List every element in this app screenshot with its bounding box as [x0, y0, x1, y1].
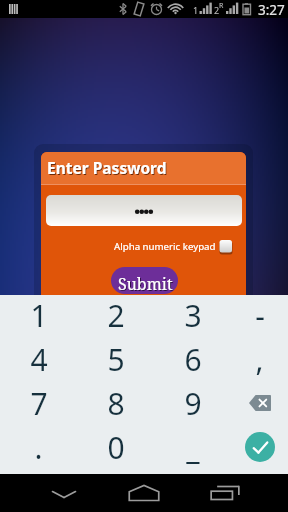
staticText: - [255, 295, 265, 336]
other: Enter [245, 432, 275, 462]
staticText: 4 [30, 339, 48, 380]
button[interactable]: - [231, 293, 288, 337]
staticText: Alpha numeric keypad [114, 240, 216, 253]
staticText: R [219, 1, 224, 11]
button[interactable]: Back [40, 478, 88, 508]
button[interactable]: Submit [111, 267, 178, 294]
staticText: , [255, 339, 264, 380]
staticText: 2 [214, 4, 220, 16]
staticText: 7 [30, 383, 48, 424]
staticText: 1 [30, 295, 48, 336]
staticText: 0 [107, 427, 125, 468]
staticText: Enter Password [48, 158, 168, 179]
button[interactable]: 6 [154, 337, 231, 381]
button[interactable]: Recent apps [201, 478, 249, 508]
staticText: 5 [107, 339, 125, 380]
staticText: Submit [118, 273, 173, 294]
staticText: Enter Password [47, 157, 167, 178]
button[interactable]: , [231, 337, 288, 381]
staticText: Submit [119, 274, 174, 294]
staticText: 8 [107, 383, 125, 424]
button[interactable]: . [0, 425, 77, 469]
button[interactable]: 2 [77, 293, 154, 337]
button[interactable]: 8 [77, 381, 154, 425]
staticText: 2 [107, 295, 125, 336]
button[interactable]: Alpha numeric keypad [114, 239, 216, 254]
button[interactable]: Backspace [231, 381, 288, 425]
button[interactable]: 3 [154, 293, 231, 337]
button[interactable] [46, 195, 242, 226]
button[interactable]: 5 [77, 337, 154, 381]
staticText: 9 [184, 383, 202, 424]
button[interactable]: 1 [0, 293, 77, 337]
button[interactable]: 4 [0, 337, 77, 381]
button[interactable]: Enter [231, 425, 288, 469]
staticText: 1 [193, 4, 199, 16]
button[interactable]: 7 [0, 381, 77, 425]
staticText: 6 [184, 339, 202, 380]
button[interactable]: Home [120, 478, 168, 508]
other: Backspace [249, 395, 271, 411]
staticText: 3 [184, 295, 202, 336]
button[interactable]: _ [154, 425, 231, 469]
staticText: _ [186, 427, 200, 468]
staticText: 3:27 [258, 1, 285, 19]
button[interactable]: 0 [77, 425, 154, 469]
button[interactable]: Alpha numeric keypad [219, 240, 233, 254]
staticText: . [34, 427, 43, 468]
button[interactable]: 9 [154, 381, 231, 425]
